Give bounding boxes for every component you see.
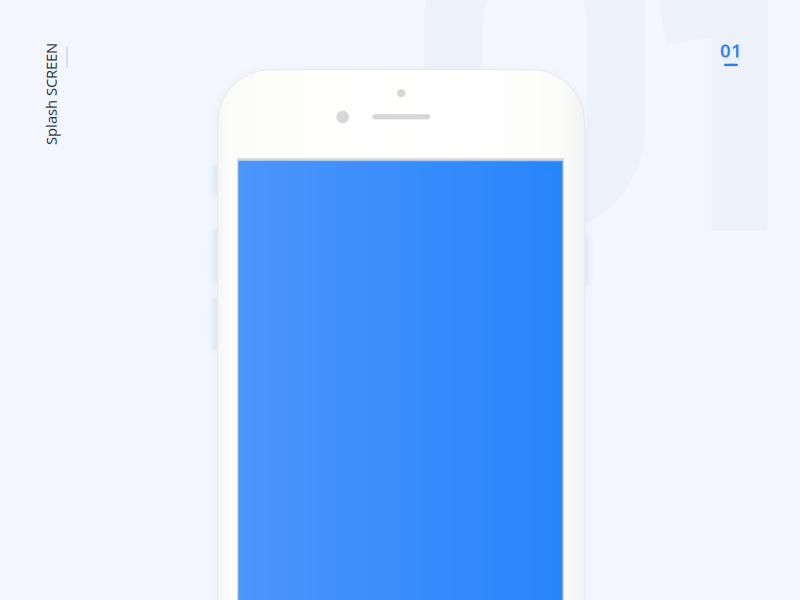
staticText: 01 — [720, 38, 742, 63]
button[interactable]: 01 — [720, 38, 742, 66]
staticText: Splash SCREEN — [0, 84, 102, 104]
